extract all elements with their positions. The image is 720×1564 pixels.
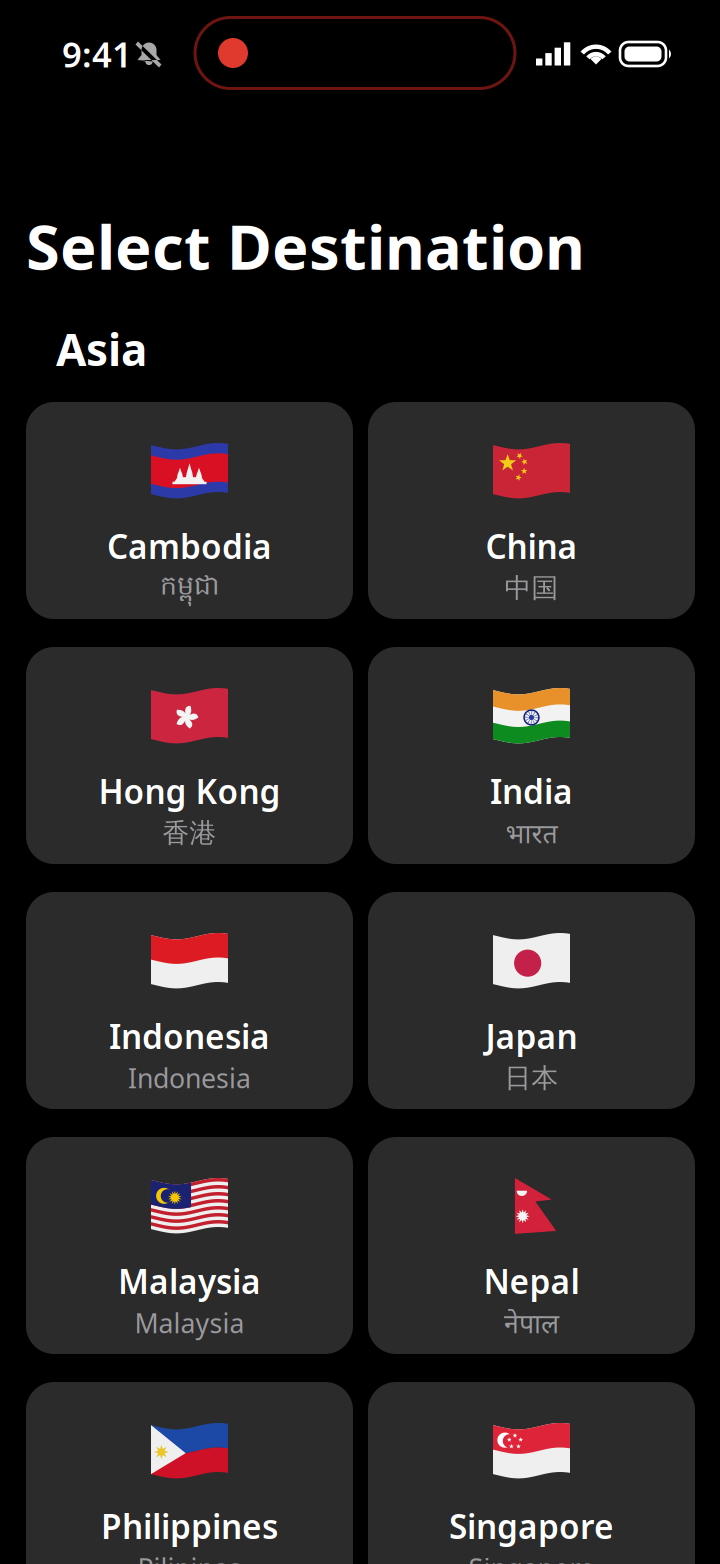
staticText: Select Destination xyxy=(26,205,585,287)
button[interactable]: Cambodia xyxy=(26,402,353,619)
staticText: Hong Kong xyxy=(98,769,280,813)
staticText: Indonesia xyxy=(128,1060,251,1096)
staticText: 9:41 xyxy=(62,31,132,77)
staticText: Nepal xyxy=(483,1259,579,1303)
button[interactable]: Nepal xyxy=(368,1137,695,1354)
button[interactable]: China xyxy=(368,402,695,619)
staticText: India xyxy=(490,769,573,813)
button[interactable]: Singapore xyxy=(368,1382,695,1564)
button[interactable]: Hong Kong xyxy=(26,647,353,864)
staticText: 中国 xyxy=(504,572,558,604)
staticText: Philippines xyxy=(101,1504,278,1548)
staticText: China xyxy=(485,524,577,568)
staticText: भारत xyxy=(505,815,557,851)
staticText: Singapore xyxy=(449,1504,614,1548)
staticText: 香港 xyxy=(162,817,216,849)
staticText: Cambodia xyxy=(107,524,272,568)
staticText: Pilipinas xyxy=(137,1550,241,1564)
staticText: កម្ពុជា xyxy=(160,569,219,607)
button[interactable]: Malaysia xyxy=(26,1137,353,1354)
staticText: Japan xyxy=(485,1014,577,1058)
staticText: 日本 xyxy=(504,1062,558,1094)
staticText: Malaysia xyxy=(134,1305,244,1341)
button[interactable]: Indonesia xyxy=(26,892,353,1109)
button[interactable]: Philippines xyxy=(26,1382,353,1564)
button[interactable]: India xyxy=(368,647,695,864)
staticText: Asia xyxy=(56,320,147,378)
button[interactable]: Japan xyxy=(368,892,695,1109)
staticText: Singapore xyxy=(468,1550,594,1564)
staticText: नेपाल xyxy=(504,1305,559,1341)
staticText: Malaysia xyxy=(118,1259,261,1303)
staticText: Indonesia xyxy=(109,1014,270,1058)
